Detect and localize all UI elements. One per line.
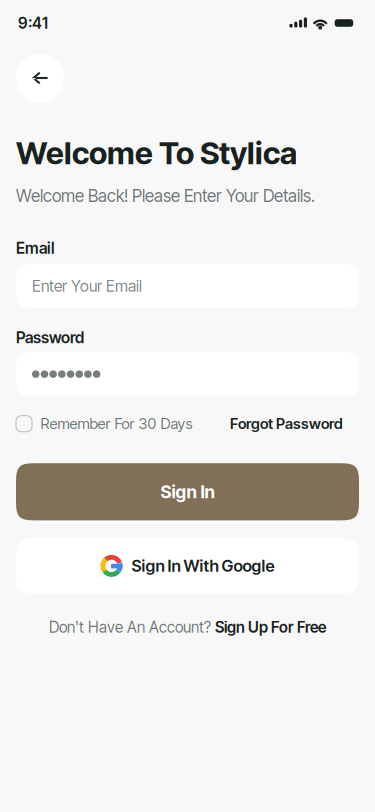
staticText: Forgot Password xyxy=(230,415,343,433)
staticText: Password xyxy=(16,328,84,347)
staticText: 9:41 xyxy=(18,14,48,32)
button[interactable]: Forgot Password xyxy=(230,415,343,433)
button[interactable]: Sign In xyxy=(16,463,359,520)
staticText: Sign Up For Free xyxy=(215,618,326,636)
button[interactable]: Sign In With Google xyxy=(16,538,359,593)
button[interactable]: Remember For 30 Days xyxy=(16,415,192,433)
button[interactable]: Don't Have An Account? xyxy=(0,618,375,636)
staticText: Welcome Back! Please Enter Your Details. xyxy=(16,185,315,206)
staticText: Sign In xyxy=(160,481,214,502)
button[interactable]: Back xyxy=(16,54,64,102)
staticText: Sign In With Google xyxy=(131,556,274,576)
staticText: Email xyxy=(16,239,55,258)
staticText: Don't Have An Account? xyxy=(49,618,211,636)
staticText: Welcome To Stylica xyxy=(16,134,297,172)
staticText: Enter Your Email xyxy=(32,277,142,296)
staticText: Remember For 30 Days xyxy=(40,415,192,433)
